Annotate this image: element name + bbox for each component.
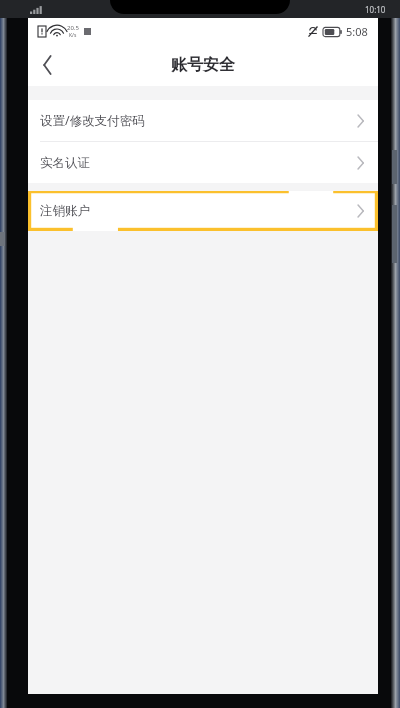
staticText: 设置/修改支付密码 [40,112,145,129]
staticText: K/s [69,32,77,39]
button[interactable]: Back [28,45,68,85]
staticText: 5:08 [346,24,368,39]
staticText: 实名认证 [40,155,90,171]
staticText: 10:10 [365,4,386,15]
button[interactable]: 设置/修改支付密码 [28,100,378,141]
staticText: 20.5 [67,24,79,32]
staticText: 注销账户 [40,203,90,219]
staticText: 账号安全 [171,55,235,75]
button[interactable]: 实名认证 [28,142,378,183]
button[interactable]: 注销账户 [28,191,378,231]
